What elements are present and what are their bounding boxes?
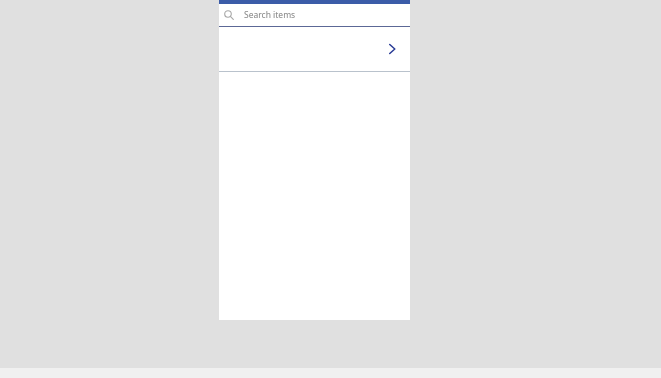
button[interactable]: Search items (219, 4, 410, 26)
button[interactable]: Next (219, 27, 410, 71)
staticText: Search items (244, 9, 296, 21)
other: Next (382, 39, 402, 59)
